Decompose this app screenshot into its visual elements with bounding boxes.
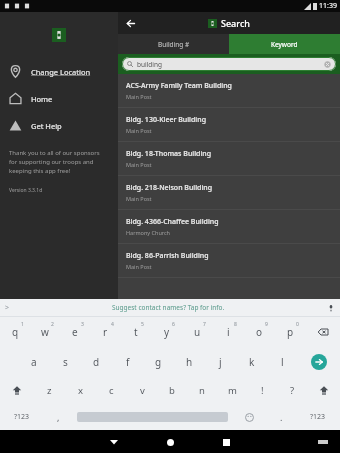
button[interactable]: Home xyxy=(159,431,181,453)
button[interactable]: Shift xyxy=(0,376,34,404)
button[interactable]: building xyxy=(122,57,336,71)
button[interactable]: a xyxy=(18,347,50,376)
staticText: Suggest contact names? Tap for info. xyxy=(112,303,225,312)
staticText: Main Post xyxy=(126,263,152,270)
staticText: o xyxy=(256,325,263,339)
other: Voice input xyxy=(327,304,335,312)
button[interactable]: . xyxy=(267,404,296,430)
button[interactable]: Enter xyxy=(298,347,340,376)
staticText: Home xyxy=(31,94,53,104)
staticText: 8 xyxy=(234,321,237,328)
button[interactable]: Bldg. 218-Nelson Building xyxy=(118,176,340,209)
button[interactable]: ! xyxy=(247,376,277,404)
staticText: 7 xyxy=(203,321,206,328)
button[interactable]: Home xyxy=(0,85,118,112)
staticText: p xyxy=(287,325,294,339)
button[interactable]: Clear xyxy=(324,61,331,68)
button[interactable]: Recents xyxy=(215,431,237,453)
staticText: s xyxy=(63,355,68,369)
staticText: j xyxy=(219,355,222,369)
button[interactable]: k xyxy=(236,347,267,376)
button[interactable]: b xyxy=(157,376,187,404)
other: Home xyxy=(9,92,22,105)
button[interactable]: x xyxy=(65,376,96,404)
button[interactable]: f xyxy=(112,347,143,376)
button[interactable]: Bldg. 4366-Chaffee Building xyxy=(118,210,340,243)
staticText: v xyxy=(140,384,145,397)
staticText: 0 xyxy=(296,321,299,328)
staticText: 1 xyxy=(21,321,24,328)
button[interactable]: w xyxy=(30,317,60,347)
button[interactable]: Get Help xyxy=(0,112,118,139)
button[interactable]: h xyxy=(174,347,205,376)
button[interactable]: j xyxy=(205,347,236,376)
button[interactable]: s xyxy=(50,347,81,376)
staticText: Bldg. 18-Thomas Building xyxy=(126,149,212,159)
button[interactable]: r xyxy=(90,317,120,347)
staticText: ACS-Army Family Team Building xyxy=(126,81,232,91)
button[interactable]: e xyxy=(60,317,90,347)
button[interactable]: , xyxy=(44,404,73,430)
button[interactable]: u xyxy=(182,317,213,347)
button[interactable]: ? xyxy=(277,376,307,404)
staticText: > xyxy=(5,303,10,313)
staticText: y xyxy=(164,325,170,339)
staticText: Building # xyxy=(158,40,190,49)
staticText: a xyxy=(31,355,37,369)
button[interactable]: Building # xyxy=(118,34,229,54)
staticText: , xyxy=(57,411,60,423)
staticText: ! xyxy=(261,384,264,397)
staticText: h xyxy=(186,355,193,369)
staticText: Bldg. 4366-Chaffee Building xyxy=(126,217,219,227)
button[interactable]: z xyxy=(34,376,65,404)
button[interactable]: ?123 xyxy=(296,404,340,430)
button[interactable]: Keyword xyxy=(229,34,340,54)
button[interactable]: Bldg. 18-Thomas Building xyxy=(118,142,340,175)
button[interactable]: y xyxy=(151,317,182,347)
button[interactable]: > xyxy=(0,299,340,316)
other: Get Help xyxy=(9,119,22,132)
button[interactable]: Location xyxy=(0,58,118,85)
button[interactable]: d xyxy=(81,347,112,376)
staticText: Bldg. 86-Parrish Building xyxy=(126,251,209,261)
staticText: Keyword xyxy=(271,40,298,49)
staticText: i xyxy=(227,325,230,339)
button[interactable]: Back xyxy=(122,15,138,31)
button[interactable]: o xyxy=(244,317,275,347)
button[interactable]: ACS-Army Family Team Building xyxy=(118,74,340,107)
staticText: 5 xyxy=(141,321,144,328)
staticText: q xyxy=(12,325,19,339)
button[interactable]: Emoji xyxy=(232,404,267,430)
button[interactable]: Bldg. 86-Parrish Building xyxy=(118,244,340,277)
button[interactable]: Bldg. 130-Kleer Building xyxy=(118,108,340,141)
button[interactable]: g xyxy=(143,347,174,376)
button[interactable]: c xyxy=(96,376,127,404)
button[interactable]: Back xyxy=(103,431,125,453)
button[interactable]: v xyxy=(127,376,157,404)
staticText: ? xyxy=(290,384,295,397)
staticText: ?123 xyxy=(14,412,30,422)
button[interactable]: i xyxy=(213,317,244,347)
staticText: b xyxy=(169,384,175,397)
staticText: Harmony Church xyxy=(126,229,171,236)
button[interactable]: ?123 xyxy=(0,404,44,430)
staticText: Change Location xyxy=(31,67,91,77)
staticText: g xyxy=(155,355,162,369)
staticText: 4 xyxy=(111,321,114,328)
other: Location xyxy=(9,65,22,78)
staticText: k xyxy=(249,355,255,369)
button[interactable]: q xyxy=(0,317,30,347)
button[interactable]: n xyxy=(187,376,217,404)
button[interactable]: l xyxy=(267,347,298,376)
button[interactable]: Shift xyxy=(307,376,340,404)
staticText: e xyxy=(72,325,78,339)
staticText: u xyxy=(194,325,201,339)
staticText: Main Post xyxy=(126,127,152,134)
button[interactable]: p xyxy=(275,317,306,347)
button[interactable]: t xyxy=(120,317,151,347)
staticText: f xyxy=(126,355,130,369)
button[interactable]: m xyxy=(217,376,247,404)
button[interactable]: Backspace xyxy=(306,317,340,347)
staticText: 2 xyxy=(51,321,54,328)
